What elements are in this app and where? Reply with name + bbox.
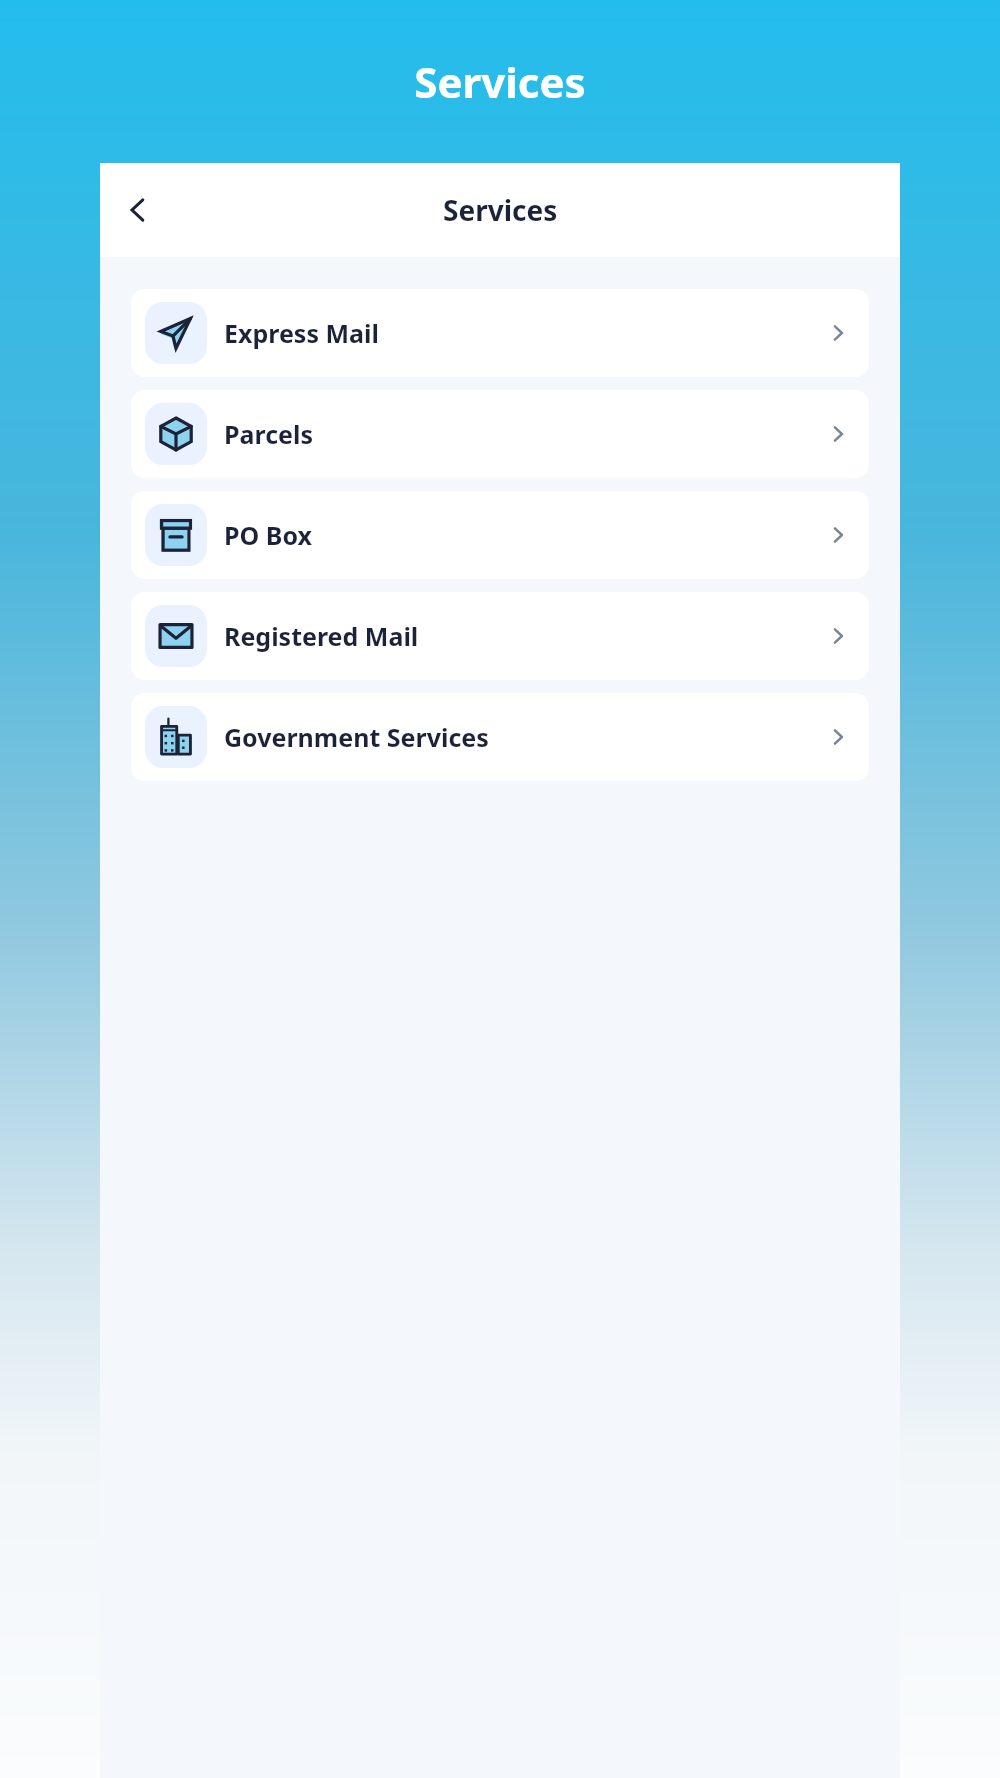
button[interactable]: Back [108,180,168,240]
button[interactable]: Government Services [131,693,869,781]
staticText: Government Services [224,720,489,754]
staticText: Express Mail [224,316,379,350]
staticText: Services [443,191,558,229]
button[interactable]: PO Box [131,491,869,579]
button[interactable]: Express Mail [131,289,869,377]
staticText: Registered Mail [224,619,419,653]
staticText: PO Box [224,518,313,552]
staticText: Parcels [224,417,314,451]
staticText: Services [414,53,586,110]
button[interactable]: Registered Mail [131,592,869,680]
button[interactable]: Parcels [131,390,869,478]
